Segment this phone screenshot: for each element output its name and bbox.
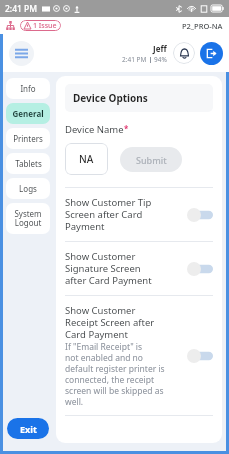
staticText: Logs bbox=[19, 183, 37, 194]
staticText: Submit bbox=[136, 154, 167, 166]
staticText: Info bbox=[20, 83, 36, 94]
staticText: 1 Issue bbox=[33, 21, 57, 31]
staticText: Exit bbox=[20, 423, 37, 435]
staticText: Show Customer Tip Screen after Card Paym… bbox=[65, 196, 152, 233]
button[interactable]: Show Customer Signature Screen after Car… bbox=[65, 242, 213, 295]
staticText: 94% bbox=[154, 55, 167, 64]
staticText: Device Name bbox=[65, 123, 124, 136]
button[interactable]: System Logout bbox=[6, 203, 50, 234]
staticText: If "Email Receipt" is not enabled and no… bbox=[65, 341, 165, 407]
staticText: Jeff bbox=[153, 43, 167, 54]
staticText: Device Options bbox=[73, 91, 148, 105]
button[interactable]: Exit bbox=[7, 418, 49, 439]
staticText: General bbox=[12, 108, 44, 119]
staticText: NA bbox=[79, 152, 94, 166]
other: Toggle bbox=[187, 208, 213, 222]
staticText: 2:41 PM bbox=[5, 3, 38, 15]
button[interactable]: Submit bbox=[120, 147, 182, 172]
staticText: System Logout bbox=[14, 208, 42, 229]
button[interactable]: Show Customer Tip Screen after Card Paym… bbox=[65, 188, 213, 241]
other: Network bbox=[6, 21, 15, 30]
button[interactable]: General bbox=[6, 103, 50, 124]
button[interactable]: Tablets bbox=[6, 153, 50, 174]
staticText: Show Customer Receipt Screen after Card … bbox=[65, 304, 155, 341]
staticText: Printers bbox=[13, 133, 43, 144]
staticText: Show Customer Signature Screen after Car… bbox=[65, 250, 152, 287]
other: Toggle bbox=[187, 262, 213, 276]
staticText: Tablets bbox=[15, 158, 42, 169]
button[interactable]: Logout bbox=[200, 42, 223, 65]
button[interactable]: Printers bbox=[6, 128, 50, 149]
staticText: P2_PRO-NA bbox=[182, 21, 223, 31]
staticText: * bbox=[124, 123, 129, 134]
button[interactable]: 1 Issue bbox=[20, 20, 61, 31]
button[interactable]: Show Customer Receipt Screen after Card … bbox=[65, 296, 213, 415]
button[interactable]: Info bbox=[6, 78, 50, 99]
button[interactable]: NA bbox=[65, 143, 108, 175]
button[interactable]: Logs bbox=[6, 178, 50, 199]
button[interactable]: Menu bbox=[9, 41, 34, 66]
staticText: 2:41 PM bbox=[122, 55, 147, 64]
other: Toggle bbox=[187, 349, 213, 363]
button[interactable]: Notifications bbox=[173, 42, 195, 64]
